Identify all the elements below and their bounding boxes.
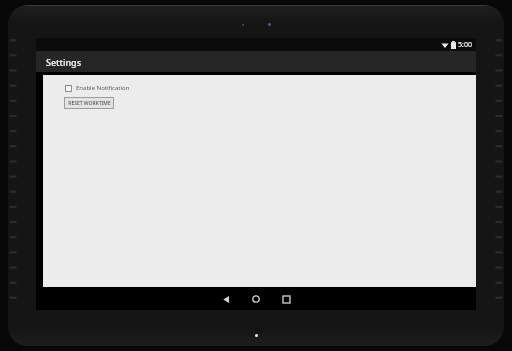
button[interactable]: Enable Notification <box>64 83 131 93</box>
button[interactable]: Recent apps <box>275 288 297 310</box>
button[interactable]: Home <box>245 288 267 310</box>
staticText: RESET WORKTIME <box>68 100 111 107</box>
button[interactable]: Back <box>215 288 237 310</box>
button[interactable]: RESET WORKTIME <box>64 97 114 109</box>
staticText: Enable Notification <box>76 84 130 92</box>
staticText: Settings <box>46 56 82 68</box>
staticText: 5:00 <box>458 40 472 50</box>
